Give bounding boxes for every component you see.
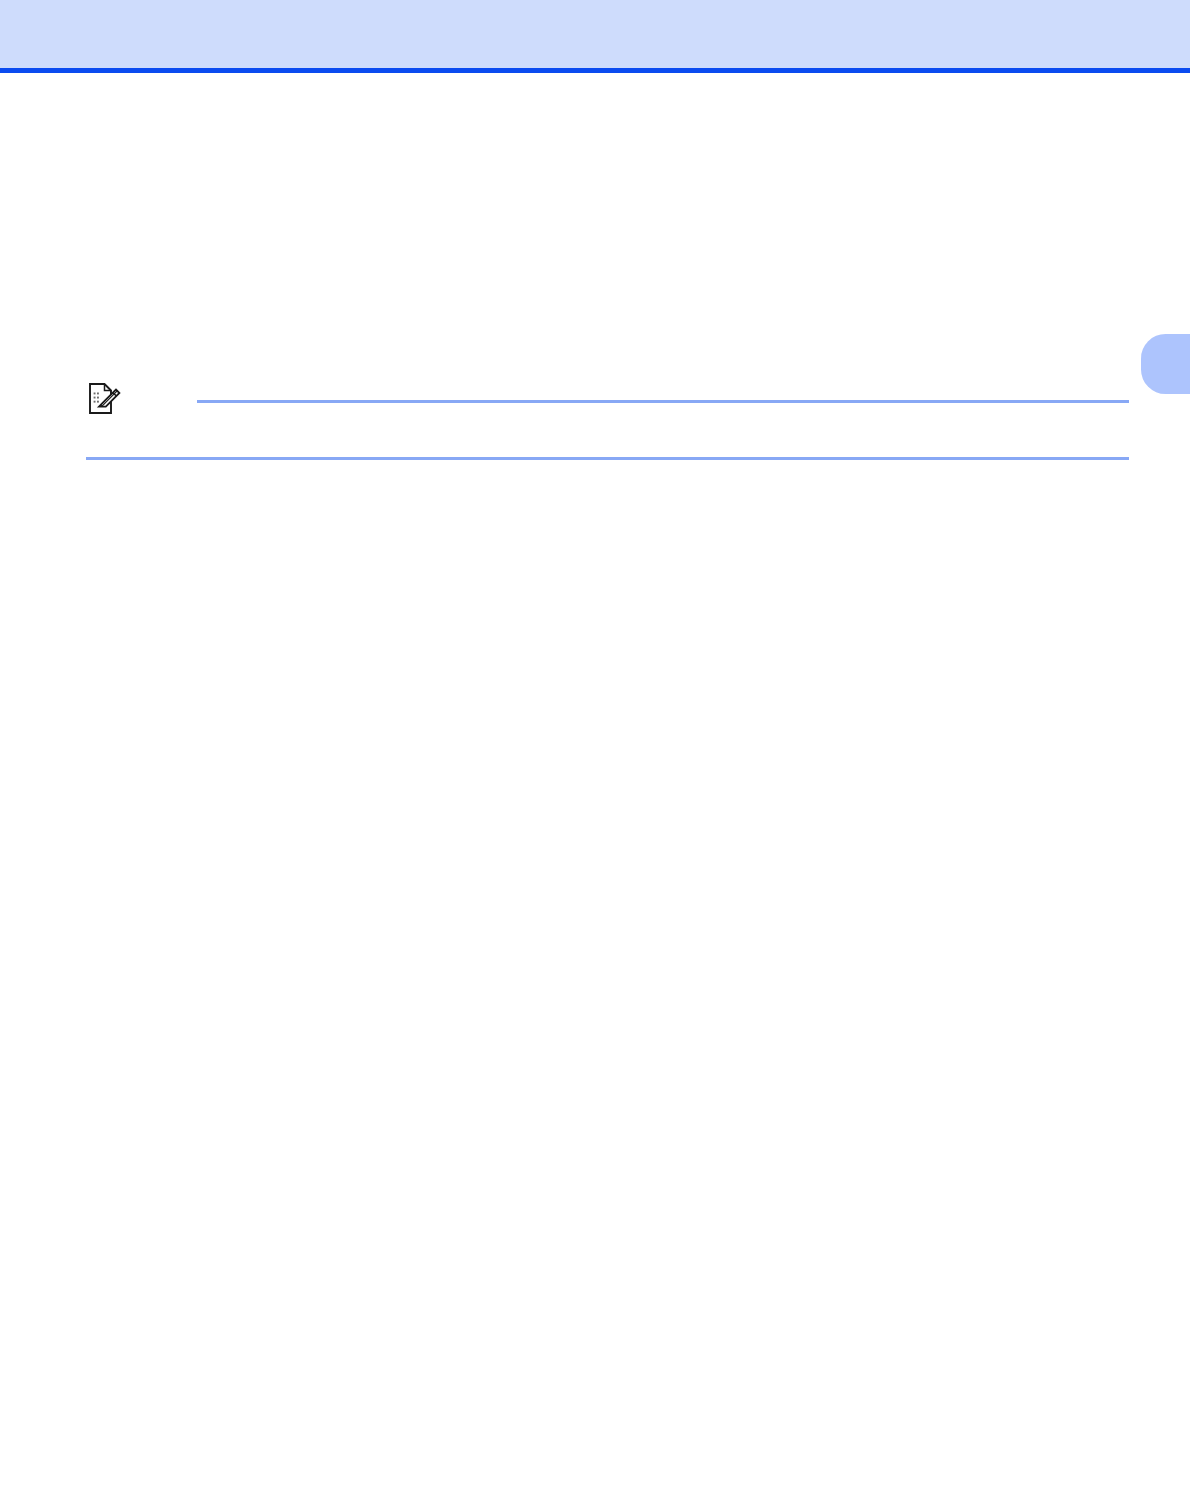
- button[interactable]: Note: [88, 382, 122, 416]
- button[interactable]: Chapter tab: [1141, 334, 1190, 394]
